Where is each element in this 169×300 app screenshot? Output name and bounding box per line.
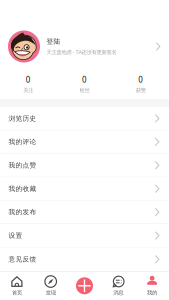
staticText: 我的点赞 <box>9 161 37 169</box>
staticText: 0 <box>138 74 143 85</box>
staticText: 设置 <box>9 231 23 240</box>
button[interactable]: 我的 <box>135 272 169 300</box>
staticText: 0 <box>82 74 87 85</box>
button[interactable]: Create <box>68 272 101 300</box>
button[interactable]: 0 <box>56 74 113 94</box>
staticText: 意见反馈 <box>9 255 37 263</box>
button[interactable]: 意见反馈 <box>0 248 169 271</box>
button[interactable]: 消息 <box>101 272 135 300</box>
button[interactable]: 登陆 <box>0 24 169 69</box>
button[interactable]: 发现 <box>34 272 68 300</box>
staticText: 我的 <box>147 289 157 296</box>
staticText: 消息 <box>113 289 123 296</box>
staticText: 粉丝 <box>79 87 89 94</box>
staticText: 我的收藏 <box>9 185 37 193</box>
button[interactable]: 我的评论 <box>0 130 169 154</box>
staticText: 我的发布 <box>9 208 37 216</box>
button[interactable]: 我的发布 <box>0 201 169 224</box>
staticText: 发现 <box>46 289 56 296</box>
button[interactable]: 首页 <box>0 272 34 300</box>
button[interactable]: 浏览历史 <box>0 107 169 130</box>
staticText: 天王盖地虎 - TA还没有更新签名 <box>46 49 116 56</box>
staticText: 首页 <box>12 289 22 296</box>
button[interactable]: 我的收藏 <box>0 177 169 201</box>
button[interactable]: 0 <box>113 74 169 94</box>
staticText: 登陆 <box>46 37 60 46</box>
staticText: 浏览历史 <box>9 114 37 122</box>
staticText: 获赞 <box>136 87 146 94</box>
staticText: 0 <box>26 74 31 85</box>
staticText: 关注 <box>23 87 33 94</box>
staticText: 我的评论 <box>9 138 37 146</box>
button[interactable]: 设置 <box>0 224 169 247</box>
button[interactable]: 0 <box>0 74 56 94</box>
button[interactable]: 我的点赞 <box>0 154 169 177</box>
